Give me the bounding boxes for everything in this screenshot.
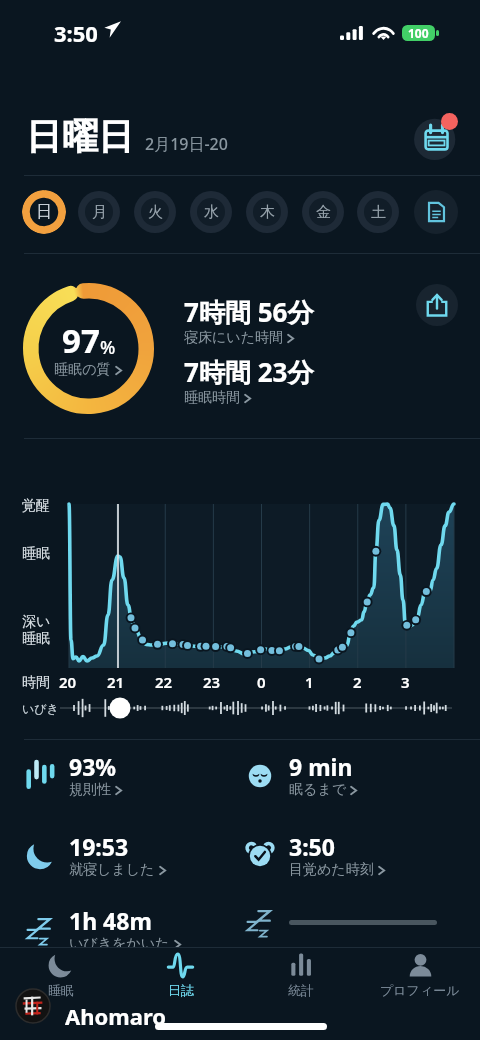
staticText: 0 — [257, 672, 266, 692]
staticText: 97 — [62, 318, 100, 363]
button[interactable]: 9 min — [243, 751, 359, 800]
staticText: 3 — [401, 672, 410, 692]
button[interactable]: 19:53 — [23, 831, 168, 880]
staticText: % — [100, 335, 116, 360]
button[interactable]: Calendar — [409, 108, 461, 160]
button[interactable]: 木 — [245, 190, 289, 234]
button[interactable]: 金 — [301, 190, 345, 234]
button[interactable]: 3:50 — [243, 831, 387, 880]
button[interactable]: 93% — [23, 751, 124, 800]
staticText: 日曜日 — [26, 114, 134, 159]
staticText: 規則性 — [69, 781, 111, 799]
button[interactable]: 日誌 — [130, 952, 230, 1000]
button[interactable]: プロフィール — [370, 952, 470, 1000]
button[interactable]: 97 — [23, 283, 154, 414]
staticText: 木 — [260, 203, 275, 222]
staticText: 日 — [36, 202, 52, 222]
staticText: いびきをかいた — [69, 935, 170, 953]
button[interactable]: 7時間 23分 — [184, 354, 314, 408]
staticText: 睡眠 — [22, 545, 50, 563]
staticText: 月 — [92, 203, 107, 222]
button[interactable]: 水 — [189, 190, 233, 234]
button[interactable]: 睡眠 — [10, 952, 110, 1000]
staticText: 1 — [305, 672, 314, 692]
staticText: 就寝しました — [69, 861, 155, 879]
staticText: 23 — [203, 672, 221, 692]
staticText: 2月19日-20 — [145, 133, 228, 155]
staticText: 寝床にいた時間 — [184, 329, 283, 347]
staticText: 統計 — [288, 982, 314, 998]
staticText: 7時間 23分 — [184, 354, 314, 390]
staticText: いびき — [22, 701, 59, 716]
staticText: 目覚めた時刻 — [289, 861, 374, 879]
staticText: 21 — [107, 672, 125, 692]
staticText: 100 — [408, 25, 429, 41]
staticText: 3:50 — [54, 18, 98, 48]
staticText: 睡眠の質 — [54, 361, 111, 379]
staticText: Ahomaro — [65, 1001, 167, 1031]
staticText: 日誌 — [168, 982, 194, 998]
button[interactable]: Share — [416, 284, 458, 326]
staticText: 22 — [155, 672, 173, 692]
staticText: 睡眠時間 — [184, 389, 240, 407]
staticText: 9 min — [289, 751, 353, 782]
staticText: 3:50 — [289, 831, 335, 862]
button[interactable]: 統計 — [250, 952, 350, 1000]
staticText: 眠るまで — [289, 781, 346, 799]
button[interactable]: 火 — [133, 190, 177, 234]
staticText: 睡眠 — [48, 982, 74, 998]
staticText: 水 — [204, 203, 219, 222]
button[interactable]: 7時間 56分 — [184, 294, 314, 348]
button[interactable]: 日 — [22, 190, 66, 234]
button[interactable]: 1h 48m — [23, 905, 183, 954]
staticText: 金 — [316, 203, 331, 222]
staticText: 1h 48m — [69, 905, 152, 936]
staticText: 7時間 56分 — [184, 294, 314, 330]
button[interactable]: Notes — [414, 190, 458, 234]
staticText: 土 — [371, 203, 386, 222]
staticText: プロフィール — [380, 982, 460, 998]
staticText: 2 — [353, 672, 362, 692]
staticText: 93% — [69, 751, 117, 782]
staticText: 深い 睡眠 — [22, 613, 51, 647]
staticText: 覚醒 — [22, 497, 50, 515]
staticText: 火 — [148, 203, 163, 222]
button[interactable]: 月 — [77, 190, 121, 234]
staticText: 20 — [59, 672, 77, 692]
staticText: 19:53 — [69, 831, 129, 862]
button[interactable]: 土 — [356, 190, 400, 234]
staticText: 時間 — [22, 674, 50, 692]
